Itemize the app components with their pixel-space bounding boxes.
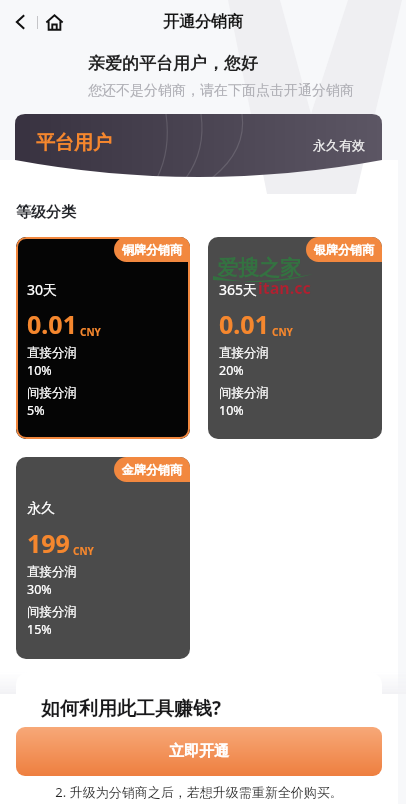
staticText: 15% <box>27 621 52 638</box>
button[interactable]: 永久 <box>16 457 190 659</box>
button[interactable]: Back <box>5 6 37 38</box>
staticText: 开通分销商 <box>163 12 243 32</box>
staticText: 199 <box>27 526 70 560</box>
staticText: 10% <box>27 362 52 379</box>
staticText: 永久有效 <box>313 137 365 153</box>
staticText: 平台用户 <box>36 131 112 155</box>
staticText: 爱搜之家 <box>217 255 301 281</box>
staticText: 0.01 <box>27 307 77 341</box>
staticText: 5% <box>27 402 45 419</box>
staticText: 等级分类 <box>16 203 76 222</box>
staticText: 直接分润 <box>27 564 77 580</box>
staticText: 永久 <box>27 500 55 518</box>
staticText: 间接分润 <box>27 385 77 401</box>
staticText: itan.cc <box>258 277 311 299</box>
staticText: 20% <box>219 362 244 379</box>
staticText: 您还不是分销商，请在下面点击开通分销商 <box>88 82 354 100</box>
staticText: 亲爱的平台用户，您好 <box>88 53 258 74</box>
staticText: 0.01 <box>219 307 269 341</box>
staticText: 365天 <box>219 280 258 299</box>
staticText: 间接分润 <box>27 604 77 620</box>
staticText: 直接分润 <box>219 345 269 361</box>
staticText: CNY <box>73 544 94 558</box>
button[interactable]: 立即开通 <box>16 727 382 776</box>
staticText: 10% <box>219 402 244 419</box>
button[interactable]: 365天 <box>208 237 382 439</box>
staticText: CNY <box>272 325 293 339</box>
staticText: 30% <box>27 581 52 598</box>
staticText: 银牌分销商 <box>314 242 374 257</box>
staticText: CNY <box>80 325 101 339</box>
staticText: 直接分润 <box>27 345 77 361</box>
staticText: 30天 <box>27 280 58 299</box>
staticText: 间接分润 <box>219 385 269 401</box>
staticText: 如何利用此工具赚钱? <box>41 695 222 721</box>
staticText: 铜牌分销商 <box>122 242 182 257</box>
staticText: 金牌分销商 <box>122 462 182 477</box>
staticText: 2. 升级为分销商之后，若想升级需重新全价购买。 <box>16 783 382 801</box>
staticText: 立即开通 <box>169 742 229 761</box>
button[interactable]: 30天 <box>16 237 190 439</box>
button[interactable]: Home <box>38 6 70 38</box>
